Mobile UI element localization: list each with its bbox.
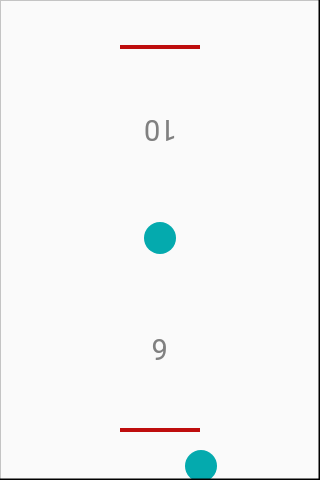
button[interactable]: Opponent paddle [120,33,200,61]
button[interactable]: Pong game field [0,0,320,480]
button[interactable]: Your paddle [120,416,200,444]
button[interactable]: Ball [144,222,176,254]
